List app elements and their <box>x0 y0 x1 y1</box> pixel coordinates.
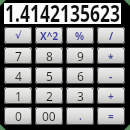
staticText: 5 <box>46 68 53 84</box>
button[interactable]: 0 <box>4 107 32 125</box>
button[interactable]: 9 <box>66 47 94 64</box>
button[interactable]: * <box>97 47 125 64</box>
staticText: 2 <box>46 88 53 104</box>
staticText: 1.4142135623 <box>5 0 121 25</box>
button[interactable]: 8 <box>35 47 63 64</box>
staticText: = <box>108 109 114 123</box>
button[interactable]: + <box>97 87 125 104</box>
button[interactable]: - <box>97 67 125 84</box>
button[interactable]: % <box>66 27 94 44</box>
staticText: 1 <box>15 88 22 104</box>
staticText: 9 <box>77 48 84 64</box>
button[interactable]: 3 <box>66 87 94 104</box>
button[interactable]: 00 <box>35 107 63 125</box>
staticText: / <box>109 29 114 43</box>
button[interactable]: 4 <box>4 67 32 84</box>
button[interactable]: 6 <box>66 67 94 84</box>
button[interactable]: 7 <box>4 47 32 64</box>
staticText: % <box>75 29 85 43</box>
staticText: √ <box>15 30 22 42</box>
staticText: . <box>79 109 82 123</box>
staticText: 3 <box>77 88 84 104</box>
button[interactable]: 5 <box>35 67 63 84</box>
button[interactable]: √ <box>4 27 32 44</box>
staticText: 6 <box>77 68 84 84</box>
staticText: 0 <box>15 108 22 124</box>
staticText: 8 <box>46 48 53 64</box>
button[interactable]: X^2 <box>35 27 63 44</box>
staticText: + <box>108 89 114 103</box>
staticText: X^2 <box>40 29 59 43</box>
button[interactable]: . <box>66 107 94 125</box>
button[interactable]: / <box>97 27 125 44</box>
button[interactable]: 1.4142135623 <box>4 3 121 24</box>
staticText: 4 <box>15 68 22 84</box>
staticText: * <box>108 51 114 64</box>
staticText: 7 <box>15 48 22 64</box>
button[interactable]: 1 <box>4 87 32 104</box>
button[interactable]: 2 <box>35 87 63 104</box>
staticText: - <box>109 69 113 83</box>
staticText: 00 <box>42 108 56 124</box>
button[interactable]: = <box>97 107 125 125</box>
